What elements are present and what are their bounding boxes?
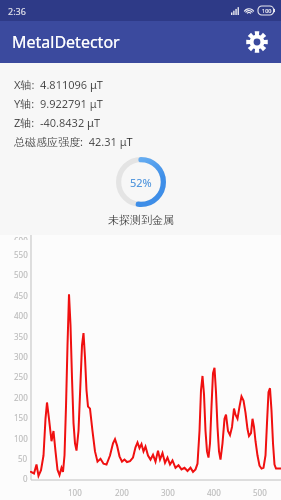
staticText: 500 <box>253 487 267 498</box>
staticText: 500 <box>14 269 28 280</box>
staticText: 150 <box>14 412 28 423</box>
staticText: 400 <box>207 487 221 498</box>
staticText: 200 <box>14 392 28 403</box>
staticText: 总磁感应强度: 42.31 μT <box>14 134 133 149</box>
staticText: 350 <box>14 331 28 342</box>
staticText: 300 <box>161 487 175 498</box>
staticText: MetalDetector <box>12 31 120 53</box>
staticText: 100 <box>14 433 28 444</box>
staticText: 100 <box>262 7 272 14</box>
staticText: 52% <box>130 175 152 190</box>
staticText: 未探测到金属 <box>108 213 174 227</box>
staticText: 300 <box>14 351 28 362</box>
staticText: 250 <box>14 371 28 382</box>
staticText: Y轴: 9.922791 μT <box>14 96 103 111</box>
staticText: 600 <box>14 235 28 240</box>
staticText: 2:36 <box>8 5 26 17</box>
staticText: Z轴: -40.8432 μT <box>14 115 101 130</box>
staticText: 200 <box>115 487 129 498</box>
staticText: 550 <box>14 249 28 260</box>
staticText: 100 <box>68 487 82 498</box>
staticText: 0 <box>23 473 28 484</box>
staticText: 450 <box>14 290 28 301</box>
staticText: 50 <box>18 453 28 464</box>
staticText: 400 <box>14 310 28 321</box>
staticText: X轴: 4.811096 μT <box>14 77 103 92</box>
button[interactable]: Settings <box>241 26 273 58</box>
